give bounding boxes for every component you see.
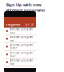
button[interactable]: Attempt program five: [4, 59, 36, 66]
button[interactable]: Attempt program four: [4, 51, 36, 59]
button[interactable]: Attempt program three: [4, 43, 36, 51]
staticText: Programs: [6, 23, 20, 26]
staticText: Attempt program four: [9, 51, 32, 58]
button[interactable]: Attempt program one: [4, 27, 36, 35]
staticText: attempt programs: [6, 7, 45, 13]
button[interactable]: See all: [25, 23, 34, 26]
staticText: Attempt program two: [9, 35, 32, 42]
button[interactable]: Programs: [6, 23, 20, 26]
staticText: Attempt program five: [9, 59, 32, 66]
staticText: Sign Up with new: [6, 2, 41, 7]
button[interactable]: Attempt program two: [4, 35, 36, 43]
staticText: Attempt program three: [9, 43, 32, 50]
staticText: Attempt program one: [9, 27, 32, 34]
staticText: See all: [25, 23, 34, 26]
